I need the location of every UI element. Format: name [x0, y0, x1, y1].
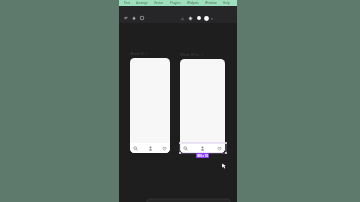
button[interactable]: Search	[133, 146, 138, 151]
button[interactable]: 390 x 74	[196, 153, 209, 158]
button[interactable]: Profile	[200, 146, 205, 151]
button[interactable]: Favorites	[217, 146, 222, 151]
staticText: 390 x 74	[197, 154, 208, 158]
button[interactable]: Text	[121, 1, 133, 5]
staticText: iPhone 16 - 1	[130, 52, 148, 56]
button[interactable]: Search	[180, 143, 225, 153]
staticText: iPhone 16 Pro - 1	[180, 53, 203, 57]
button[interactable]: Plugins	[167, 1, 184, 5]
button[interactable]: Window	[202, 1, 220, 5]
button[interactable]: Arrange	[133, 1, 151, 5]
button[interactable]: Search	[180, 59, 225, 153]
button[interactable]: Plugins	[188, 16, 193, 21]
button[interactable]: Vector	[151, 1, 167, 5]
button[interactable]: Move tool	[132, 16, 136, 20]
button[interactable]: Dev mode	[180, 16, 185, 21]
button[interactable]: Search	[130, 143, 170, 153]
button[interactable]: Profile	[148, 146, 153, 151]
button[interactable]: Frame tool	[140, 16, 144, 20]
button[interactable]: Search	[130, 58, 170, 153]
button[interactable]: Collaborator 2	[204, 16, 209, 21]
button[interactable]: Favorites	[162, 146, 167, 151]
button[interactable]: Help	[220, 1, 233, 5]
button[interactable]: Main menu	[124, 16, 128, 20]
button[interactable]: Search	[183, 146, 188, 151]
button[interactable]: Cursor	[220, 162, 227, 169]
button[interactable]: Widgets	[184, 1, 202, 5]
button[interactable]: Collaborator 1	[197, 16, 201, 20]
